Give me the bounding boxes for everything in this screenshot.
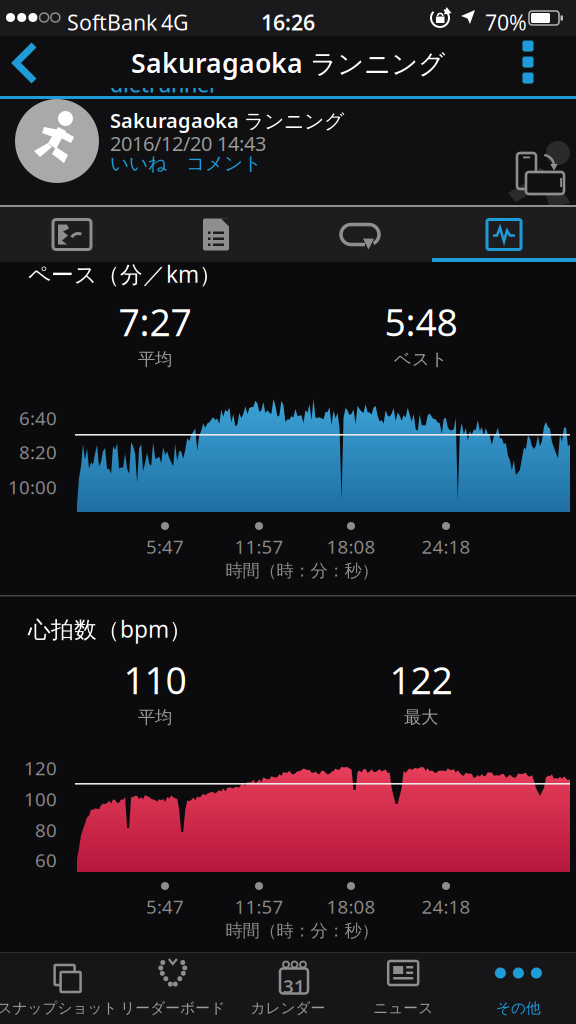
staticText: スナップショット (0, 999, 118, 1017)
staticText: 最大 (404, 707, 438, 728)
button[interactable]: いいね (110, 152, 167, 175)
staticText: 24:18 (421, 894, 470, 919)
staticText: 70% (485, 8, 527, 36)
staticText: 11:57 (234, 894, 283, 919)
staticText: 心拍数（bpm） (28, 614, 192, 644)
staticText: 120 (24, 756, 57, 780)
button[interactable]: Back (8, 41, 42, 85)
staticText: 110 (123, 655, 186, 705)
staticText: 6:40 (19, 406, 57, 430)
staticText: 8:20 (19, 440, 57, 464)
staticText: 122 (389, 655, 452, 705)
staticText: ベスト (394, 349, 448, 370)
button[interactable]: その他 (461, 956, 576, 1022)
staticText: 時間（時：分：秒） (225, 560, 378, 581)
button[interactable]: Rotate to landscape (517, 150, 565, 196)
staticText: 18:08 (326, 534, 375, 559)
button[interactable]: ニュース (346, 956, 461, 1022)
staticText: 5:47 (146, 894, 184, 919)
staticText: Sakuragaoka ランニング (131, 45, 445, 81)
button[interactable]: コメント (186, 152, 262, 175)
staticText: カレンダー (250, 999, 325, 1017)
staticText: 100 (24, 787, 57, 811)
staticText: ニュース (373, 999, 433, 1017)
staticText: 時間（時：分：秒） (225, 920, 378, 941)
staticText: リーダーボード (120, 999, 225, 1017)
button[interactable]: スナップショット (0, 956, 115, 1022)
staticText: 7:27 (118, 297, 191, 347)
staticText: SoftBank (67, 8, 157, 36)
staticText: いいね (110, 152, 167, 175)
staticText: dietrunner (110, 70, 218, 98)
button[interactable]: dietrunner (110, 70, 218, 98)
button[interactable]: Photos (0, 207, 144, 262)
staticText: 31 (283, 973, 305, 998)
button[interactable]: Details (144, 207, 288, 262)
button[interactable]: More options (508, 36, 548, 88)
button[interactable]: Charts (432, 207, 576, 262)
staticText: 5:48 (384, 297, 457, 347)
staticText: 5:47 (146, 534, 184, 559)
staticText: その他 (496, 999, 541, 1017)
button[interactable]: カレンダー (230, 956, 346, 1022)
staticText: ペース（分／km） (28, 259, 222, 289)
staticText: Sakuragaoka ランニング (110, 107, 344, 134)
staticText: 24:18 (421, 534, 470, 559)
button[interactable]: リーダーボード (115, 956, 230, 1022)
button[interactable]: Laps (288, 207, 432, 262)
staticText: 4G (161, 8, 189, 36)
staticText: 2016/12/20 14:43 (110, 130, 266, 157)
staticText: 18:08 (326, 894, 375, 919)
staticText: 11:57 (234, 534, 283, 559)
staticText: 平均 (138, 707, 172, 728)
staticText: 10:00 (8, 475, 57, 499)
staticText: 平均 (138, 349, 172, 370)
staticText: 16:26 (261, 8, 315, 36)
staticText: コメント (186, 152, 262, 175)
staticText: 60 (35, 848, 57, 872)
staticText: 80 (35, 818, 57, 842)
